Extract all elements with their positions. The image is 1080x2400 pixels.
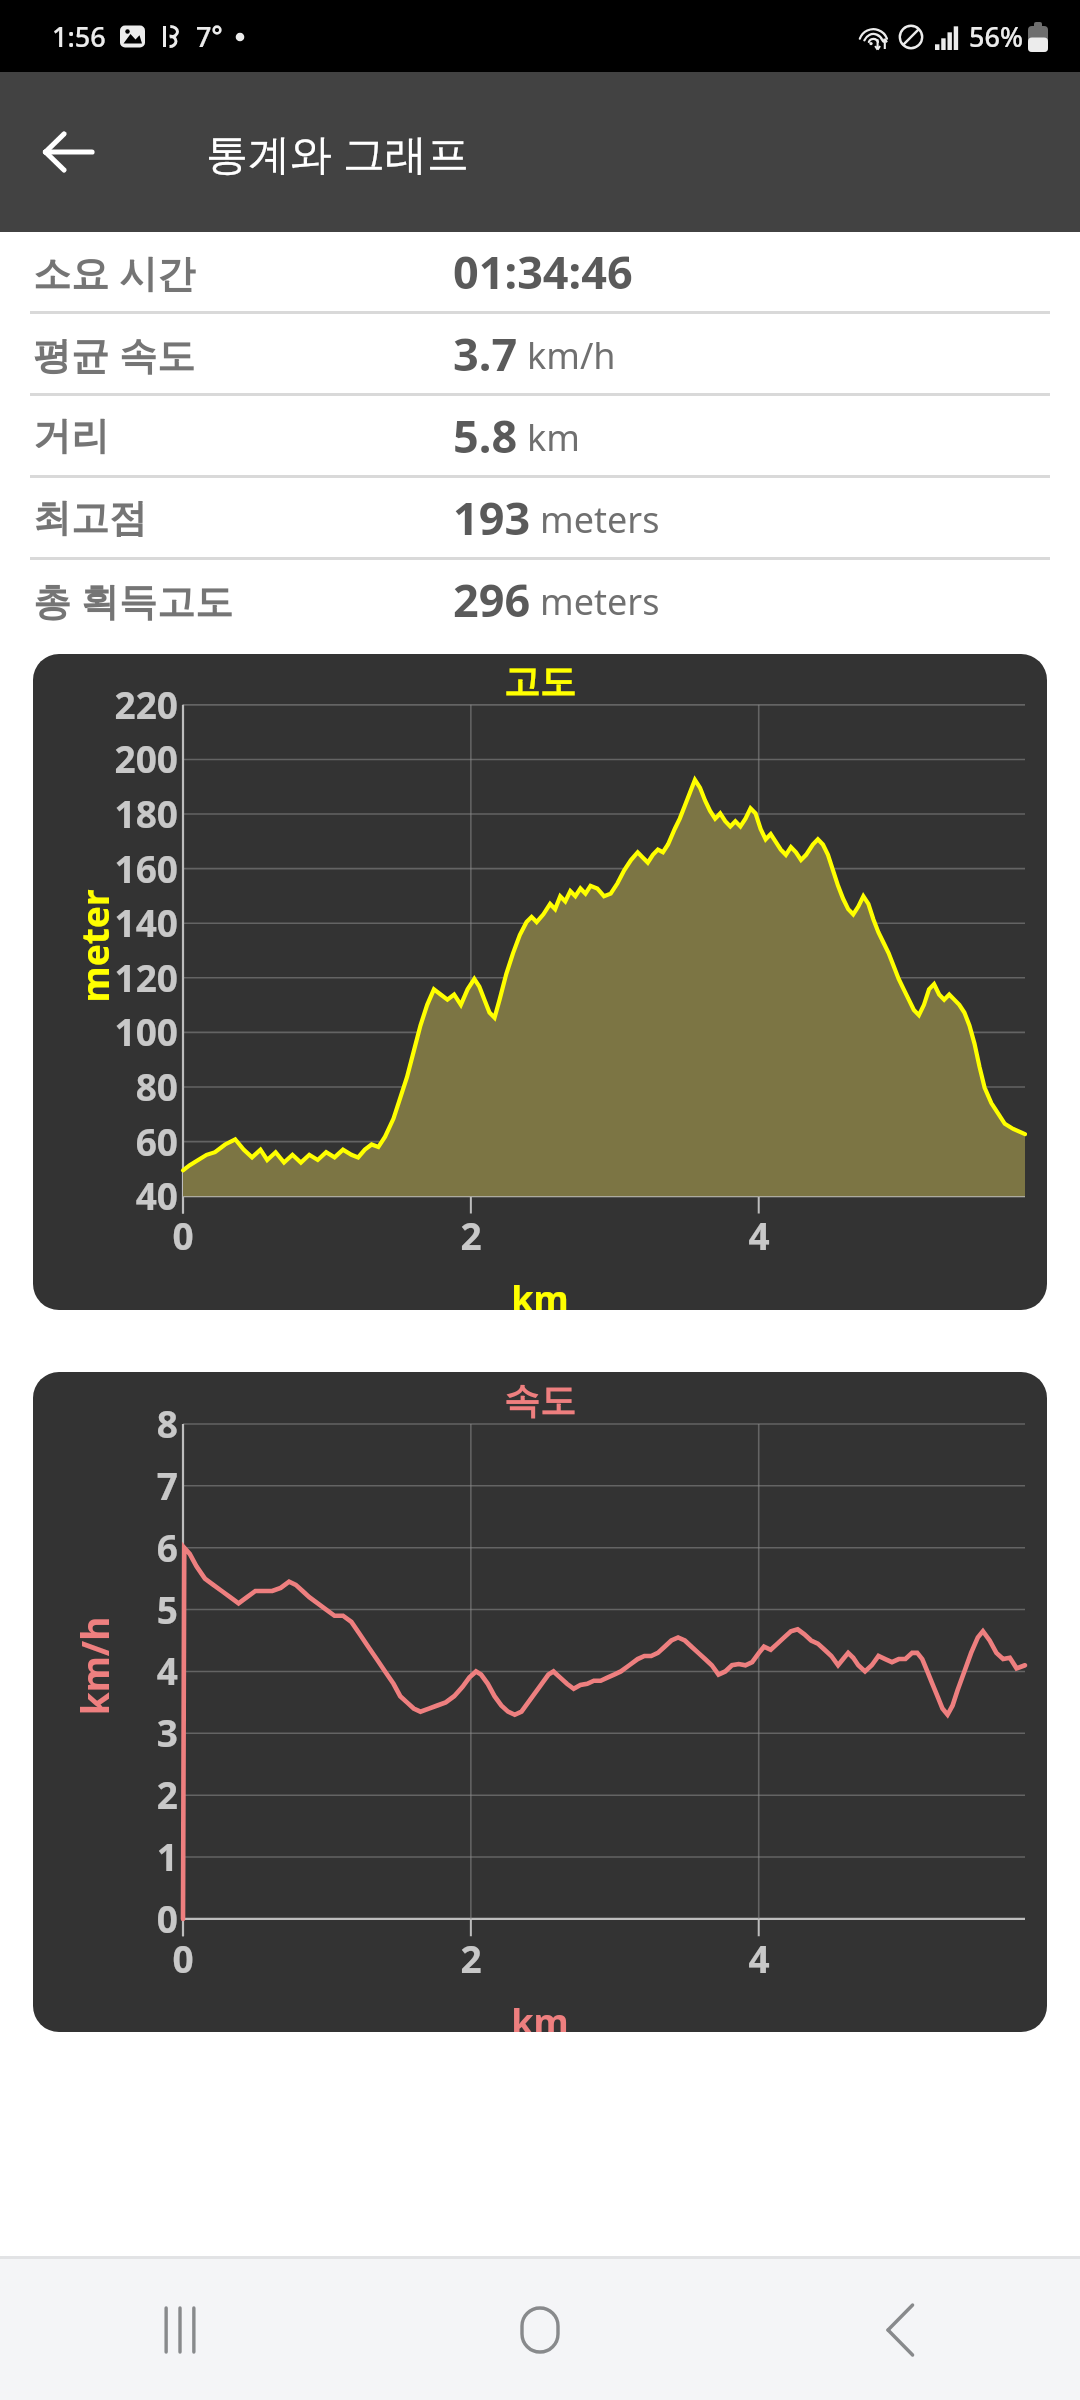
- staticText: 속도: [33, 1378, 1047, 1423]
- staticText: 평균 속도: [33, 328, 195, 380]
- staticText: 1: [33, 1831, 178, 1881]
- staticText: 5: [33, 1584, 178, 1634]
- staticText: 56%: [969, 18, 1023, 55]
- staticText: 7: [196, 18, 212, 55]
- staticText: 60: [33, 1116, 178, 1166]
- staticText: 0: [33, 1893, 178, 1943]
- staticText: 4: [739, 1210, 779, 1260]
- staticText: 소요 시간: [33, 246, 195, 298]
- staticText: 296: [453, 569, 531, 630]
- staticText: 100: [33, 1006, 178, 1056]
- button[interactable]: Back: [720, 2259, 1080, 2400]
- staticText: km: [33, 1274, 1047, 1310]
- staticText: 40: [33, 1170, 178, 1220]
- button[interactable]: Home: [360, 2259, 720, 2400]
- staticText: meters: [540, 577, 660, 626]
- staticText: 2: [451, 1933, 491, 1983]
- staticText: 3: [33, 1707, 178, 1757]
- staticText: 거리: [33, 412, 109, 460]
- button[interactable]: Back: [20, 104, 116, 200]
- staticText: 180: [33, 788, 178, 838]
- staticText: 6: [33, 1522, 178, 1572]
- staticText: km: [527, 413, 580, 462]
- staticText: 80: [33, 1061, 178, 1111]
- staticText: 160: [33, 843, 178, 893]
- button[interactable]: 소요 시간: [0, 232, 1080, 311]
- staticText: 8: [33, 1398, 178, 1448]
- button[interactable]: 최고점: [0, 478, 1080, 557]
- button[interactable]: Recent apps: [0, 2259, 360, 2400]
- staticText: 7: [33, 1460, 178, 1510]
- staticText: 2: [33, 1769, 178, 1819]
- button[interactable]: 거리: [0, 396, 1080, 475]
- staticText: 통계와 그래프: [206, 124, 469, 181]
- staticText: meters: [540, 495, 660, 544]
- staticText: 1:56: [52, 18, 106, 55]
- button[interactable]: 평균 속도: [0, 314, 1080, 393]
- staticText: 220: [33, 679, 178, 729]
- staticText: 4: [739, 1933, 779, 1983]
- staticText: 01:34:46: [453, 241, 633, 302]
- staticText: 4: [33, 1645, 178, 1695]
- staticText: km/h: [527, 331, 616, 380]
- staticText: km: [33, 1997, 1047, 2032]
- staticText: 고도: [33, 659, 1047, 704]
- staticText: 140: [33, 897, 178, 947]
- staticText: 2: [451, 1210, 491, 1260]
- button[interactable]: 총 획득고도: [0, 560, 1080, 639]
- staticText: 0: [163, 1933, 203, 1983]
- staticText: 120: [33, 952, 178, 1002]
- button[interactable]: 220: [33, 654, 1047, 1310]
- staticText: meter: [69, 851, 119, 1041]
- staticText: 총 획득고도: [33, 574, 233, 626]
- staticText: 0: [163, 1210, 203, 1260]
- staticText: 3.7: [453, 323, 518, 384]
- staticText: 193: [453, 487, 531, 548]
- staticText: 200: [33, 733, 178, 783]
- staticText: km/h: [69, 1571, 119, 1761]
- button[interactable]: 8: [33, 1372, 1047, 2032]
- staticText: 5.8: [453, 405, 518, 466]
- staticText: 최고점: [33, 494, 147, 542]
